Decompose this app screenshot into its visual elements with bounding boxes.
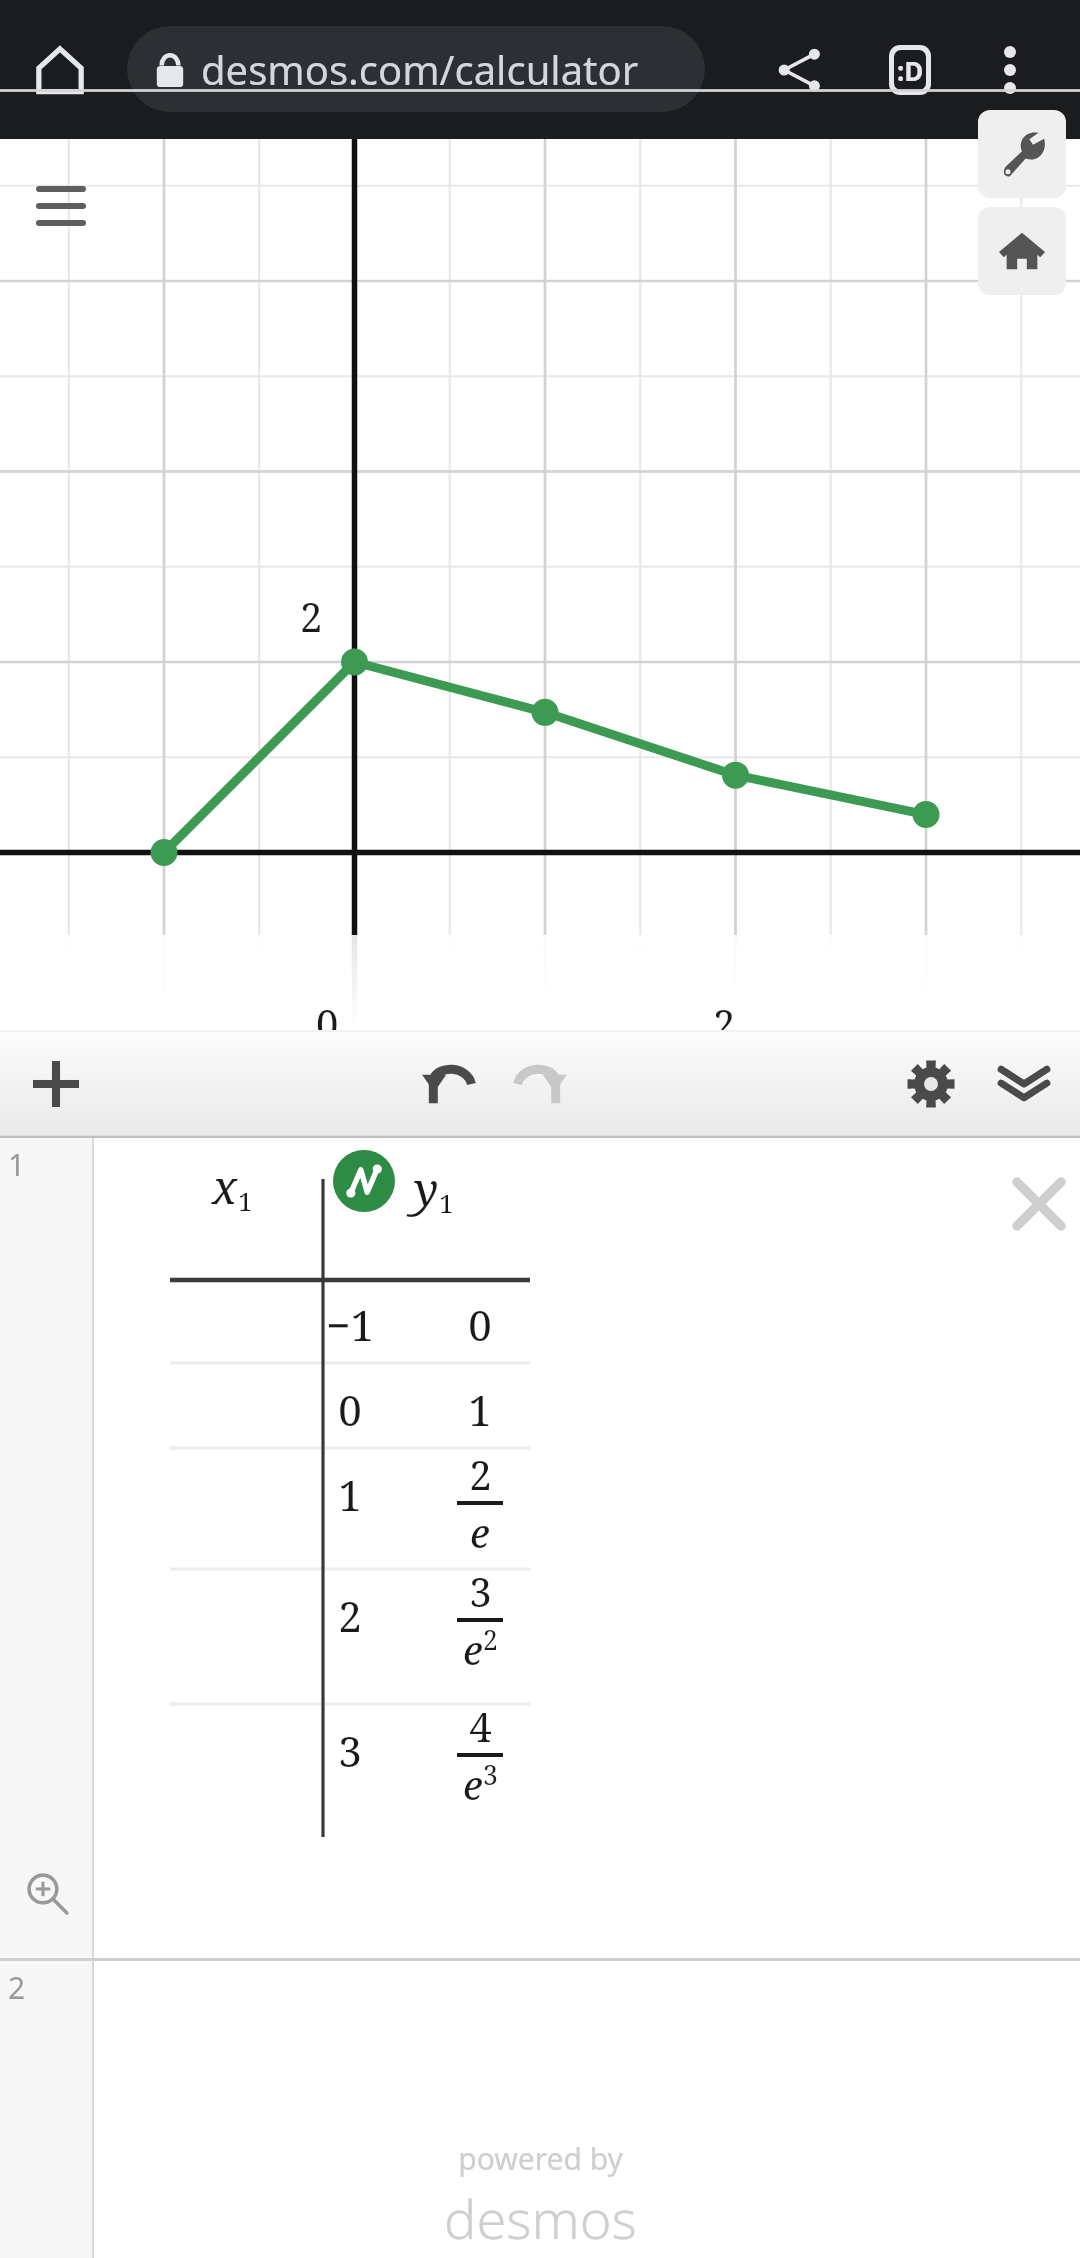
- button[interactable]: desmos.com/calculator: [127, 26, 705, 112]
- staticText: e: [463, 1757, 483, 1811]
- button[interactable]: Point style: [333, 1150, 395, 1212]
- button[interactable]: Settings: [885, 1038, 977, 1130]
- button[interactable]: Redo: [494, 1038, 586, 1130]
- button[interactable]: 1: [0, 1138, 94, 1961]
- button[interactable]: Zoom to fit: [20, 1866, 76, 1922]
- button[interactable]: Graph settings: [978, 110, 1066, 198]
- staticText: 3: [338, 1722, 362, 1779]
- staticText: 2: [469, 1447, 492, 1501]
- staticText: powered by: [458, 2138, 623, 2179]
- staticText: 1: [8, 1144, 26, 1185]
- button[interactable]: Home view: [978, 207, 1066, 295]
- staticText: 4: [469, 1699, 492, 1753]
- staticText: x: [212, 1155, 238, 1218]
- button[interactable]: Undo: [403, 1038, 495, 1130]
- staticText: :D: [897, 53, 924, 88]
- button[interactable]: Tabs: [864, 24, 956, 116]
- staticText: 1: [439, 1185, 454, 1220]
- staticText: y: [414, 1157, 439, 1220]
- button[interactable]: 2: [0, 1961, 94, 2258]
- staticText: desmos.com/calculator: [201, 42, 639, 96]
- staticText: 2: [338, 1587, 362, 1644]
- staticText: desmos: [444, 2181, 637, 2255]
- staticText: 1: [468, 1381, 492, 1438]
- staticText: 1: [238, 1183, 253, 1218]
- staticText: 3: [483, 1757, 498, 1793]
- staticText: e: [463, 1622, 483, 1676]
- staticText: 2: [713, 996, 736, 1050]
- staticText: −1: [326, 1296, 374, 1353]
- staticText: 3: [469, 1564, 492, 1618]
- button[interactable]: More options: [964, 24, 1056, 116]
- staticText: 0: [338, 1381, 362, 1438]
- staticText: 0: [468, 1296, 492, 1353]
- staticText: 2: [8, 1967, 26, 2008]
- button[interactable]: Share: [754, 24, 846, 116]
- staticText: 2: [300, 589, 323, 643]
- staticText: 1: [338, 1466, 362, 1523]
- button[interactable]: Collapse list: [978, 1038, 1070, 1130]
- button[interactable]: Add item: [10, 1038, 102, 1130]
- button[interactable]: Menu: [18, 163, 104, 249]
- button[interactable]: Home: [14, 24, 106, 116]
- staticText: e: [470, 1505, 490, 1559]
- button[interactable]: Close: [993, 1158, 1080, 1250]
- staticText: 2: [483, 1622, 498, 1658]
- staticText: 0: [316, 996, 339, 1050]
